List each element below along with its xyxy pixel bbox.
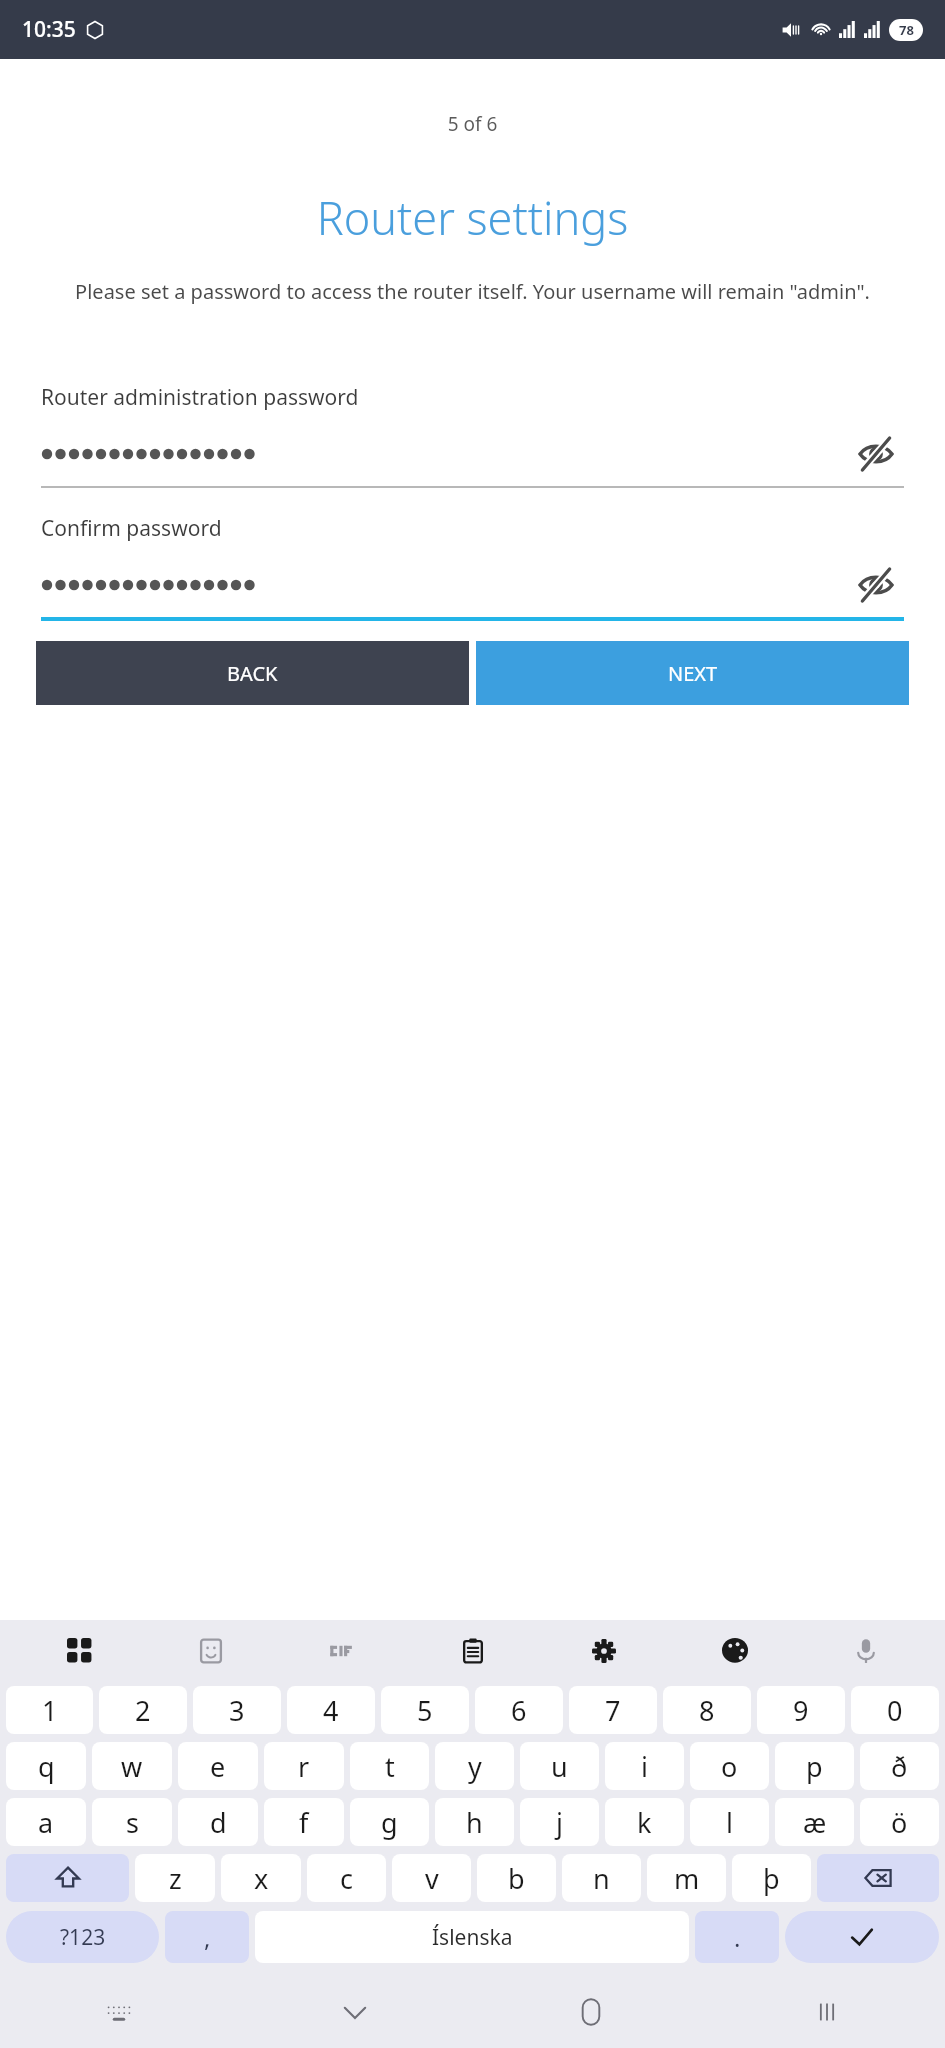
button[interactable]: æ <box>775 1798 854 1846</box>
staticText: u <box>551 1748 568 1785</box>
button[interactable]: s <box>92 1798 172 1846</box>
button[interactable]: 7 <box>569 1686 657 1734</box>
button[interactable]: t <box>350 1742 429 1790</box>
staticText: 7 <box>605 1692 621 1729</box>
button[interactable]: d <box>178 1798 258 1846</box>
staticText: Router administration password <box>41 383 359 412</box>
button[interactable]: q <box>6 1742 86 1790</box>
button[interactable]: r <box>264 1742 344 1790</box>
button[interactable]: 2 <box>99 1686 187 1734</box>
button[interactable]: Backspace <box>817 1854 939 1902</box>
staticText: 8 <box>699 1692 715 1729</box>
staticText: 78 <box>899 21 914 39</box>
button[interactable]: Hide keyboard toggle <box>0 1976 237 2048</box>
button[interactable]: þ <box>732 1854 811 1902</box>
staticText: 2 <box>135 1692 151 1729</box>
button[interactable]: BACK <box>36 641 469 705</box>
button[interactable]: Stickers <box>145 1620 276 1682</box>
staticText: l <box>726 1804 733 1841</box>
staticText: e <box>210 1748 226 1785</box>
button[interactable]: Themes <box>669 1620 800 1682</box>
staticText: c <box>340 1860 353 1897</box>
button[interactable]: f <box>264 1798 344 1846</box>
button[interactable]: Toggle password visibility <box>848 426 904 482</box>
button[interactable]: a <box>6 1798 86 1846</box>
staticText: 9 <box>793 1692 809 1729</box>
staticText: Router settings <box>0 187 945 248</box>
button[interactable]: 9 <box>757 1686 845 1734</box>
button[interactable]: ?123 <box>6 1911 159 1963</box>
staticText: h <box>466 1804 483 1841</box>
staticText: f <box>299 1804 309 1841</box>
button[interactable]: z <box>135 1854 215 1902</box>
button[interactable]: Back <box>237 1976 473 2048</box>
button[interactable]: g <box>350 1798 429 1846</box>
button[interactable]: Clipboard <box>407 1620 538 1682</box>
staticText: 10:35 <box>22 15 76 44</box>
button[interactable]: Keyboard modes <box>14 1620 145 1682</box>
button[interactable]: NEXT <box>476 641 909 705</box>
button[interactable]: j <box>520 1798 599 1846</box>
button[interactable]: 0 <box>851 1686 939 1734</box>
staticText: 6 <box>511 1692 527 1729</box>
staticText: z <box>169 1860 182 1897</box>
button[interactable]: w <box>92 1742 172 1790</box>
staticText: 0 <box>887 1692 903 1729</box>
button[interactable]: 1 <box>6 1686 93 1734</box>
button[interactable]: e <box>178 1742 258 1790</box>
staticText: b <box>508 1860 525 1897</box>
staticText: 5 <box>417 1692 433 1729</box>
staticText: þ <box>763 1860 780 1897</box>
button[interactable]: 4 <box>287 1686 375 1734</box>
button[interactable]: Toggle password visibility <box>848 557 904 613</box>
staticText: 3 <box>229 1692 245 1729</box>
button[interactable]: y <box>435 1742 514 1790</box>
staticText: i <box>641 1748 648 1785</box>
button[interactable]: x <box>221 1854 301 1902</box>
button[interactable]: o <box>690 1742 769 1790</box>
button[interactable]: 5 <box>381 1686 469 1734</box>
button[interactable]: l <box>690 1798 769 1846</box>
button[interactable]: i <box>605 1742 684 1790</box>
staticText: x <box>254 1860 269 1897</box>
staticText: ö <box>891 1804 908 1841</box>
button[interactable]: u <box>520 1742 599 1790</box>
button[interactable]: Settings <box>538 1620 669 1682</box>
button[interactable]: b <box>477 1854 556 1902</box>
button[interactable]: m <box>647 1854 726 1902</box>
button[interactable]: Shift <box>6 1854 129 1902</box>
staticText: r <box>298 1748 310 1785</box>
staticText: v <box>425 1860 439 1897</box>
staticText: 4 <box>323 1692 339 1729</box>
staticText: m <box>674 1860 700 1897</box>
button[interactable]: ð <box>860 1742 939 1790</box>
staticText: . <box>734 1921 741 1954</box>
button[interactable]: 6 <box>475 1686 563 1734</box>
button[interactable]: Recent apps <box>709 1976 945 2048</box>
button[interactable]: Home <box>473 1976 709 2048</box>
button[interactable]: Enter <box>785 1911 939 1963</box>
button[interactable]: v <box>392 1854 471 1902</box>
button[interactable]: c <box>307 1854 386 1902</box>
staticText: y <box>468 1748 482 1785</box>
staticText: q <box>38 1748 55 1785</box>
button[interactable]: , <box>165 1911 249 1963</box>
staticText: o <box>721 1748 738 1785</box>
staticText: Íslenska <box>432 1923 513 1952</box>
staticText: , <box>204 1921 211 1954</box>
button[interactable]: h <box>435 1798 514 1846</box>
staticText: Please set a password to access the rout… <box>38 278 907 305</box>
staticText: s <box>126 1804 139 1841</box>
button[interactable]: ö <box>860 1798 939 1846</box>
button[interactable]: k <box>605 1798 684 1846</box>
staticText: Confirm password <box>41 514 222 543</box>
staticText: ?123 <box>60 1923 106 1952</box>
button[interactable]: n <box>562 1854 641 1902</box>
button[interactable]: . <box>695 1911 779 1963</box>
button[interactable]: 8 <box>663 1686 751 1734</box>
button[interactable]: Voice input <box>800 1620 931 1682</box>
button[interactable]: GIF <box>276 1620 407 1682</box>
button[interactable]: p <box>775 1742 854 1790</box>
button[interactable]: Íslenska <box>255 1911 689 1963</box>
button[interactable]: 3 <box>193 1686 281 1734</box>
